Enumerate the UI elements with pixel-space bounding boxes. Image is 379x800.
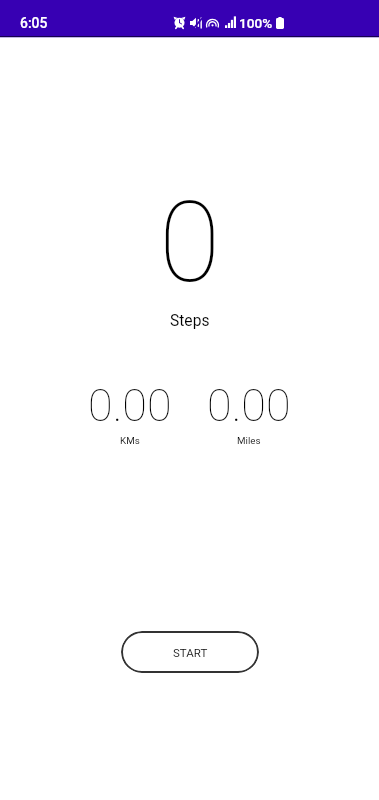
staticText: Miles <box>237 435 261 446</box>
staticText: Steps <box>170 312 210 330</box>
staticText: 0 <box>159 177 221 308</box>
staticText: 0.00 <box>207 379 291 432</box>
staticText: KMs <box>120 435 140 446</box>
button[interactable]: START <box>121 631 259 673</box>
staticText: 6:05 <box>20 15 48 31</box>
staticText: 0.00 <box>88 379 172 432</box>
staticText: 100% <box>239 15 273 31</box>
staticText: START <box>173 646 208 659</box>
